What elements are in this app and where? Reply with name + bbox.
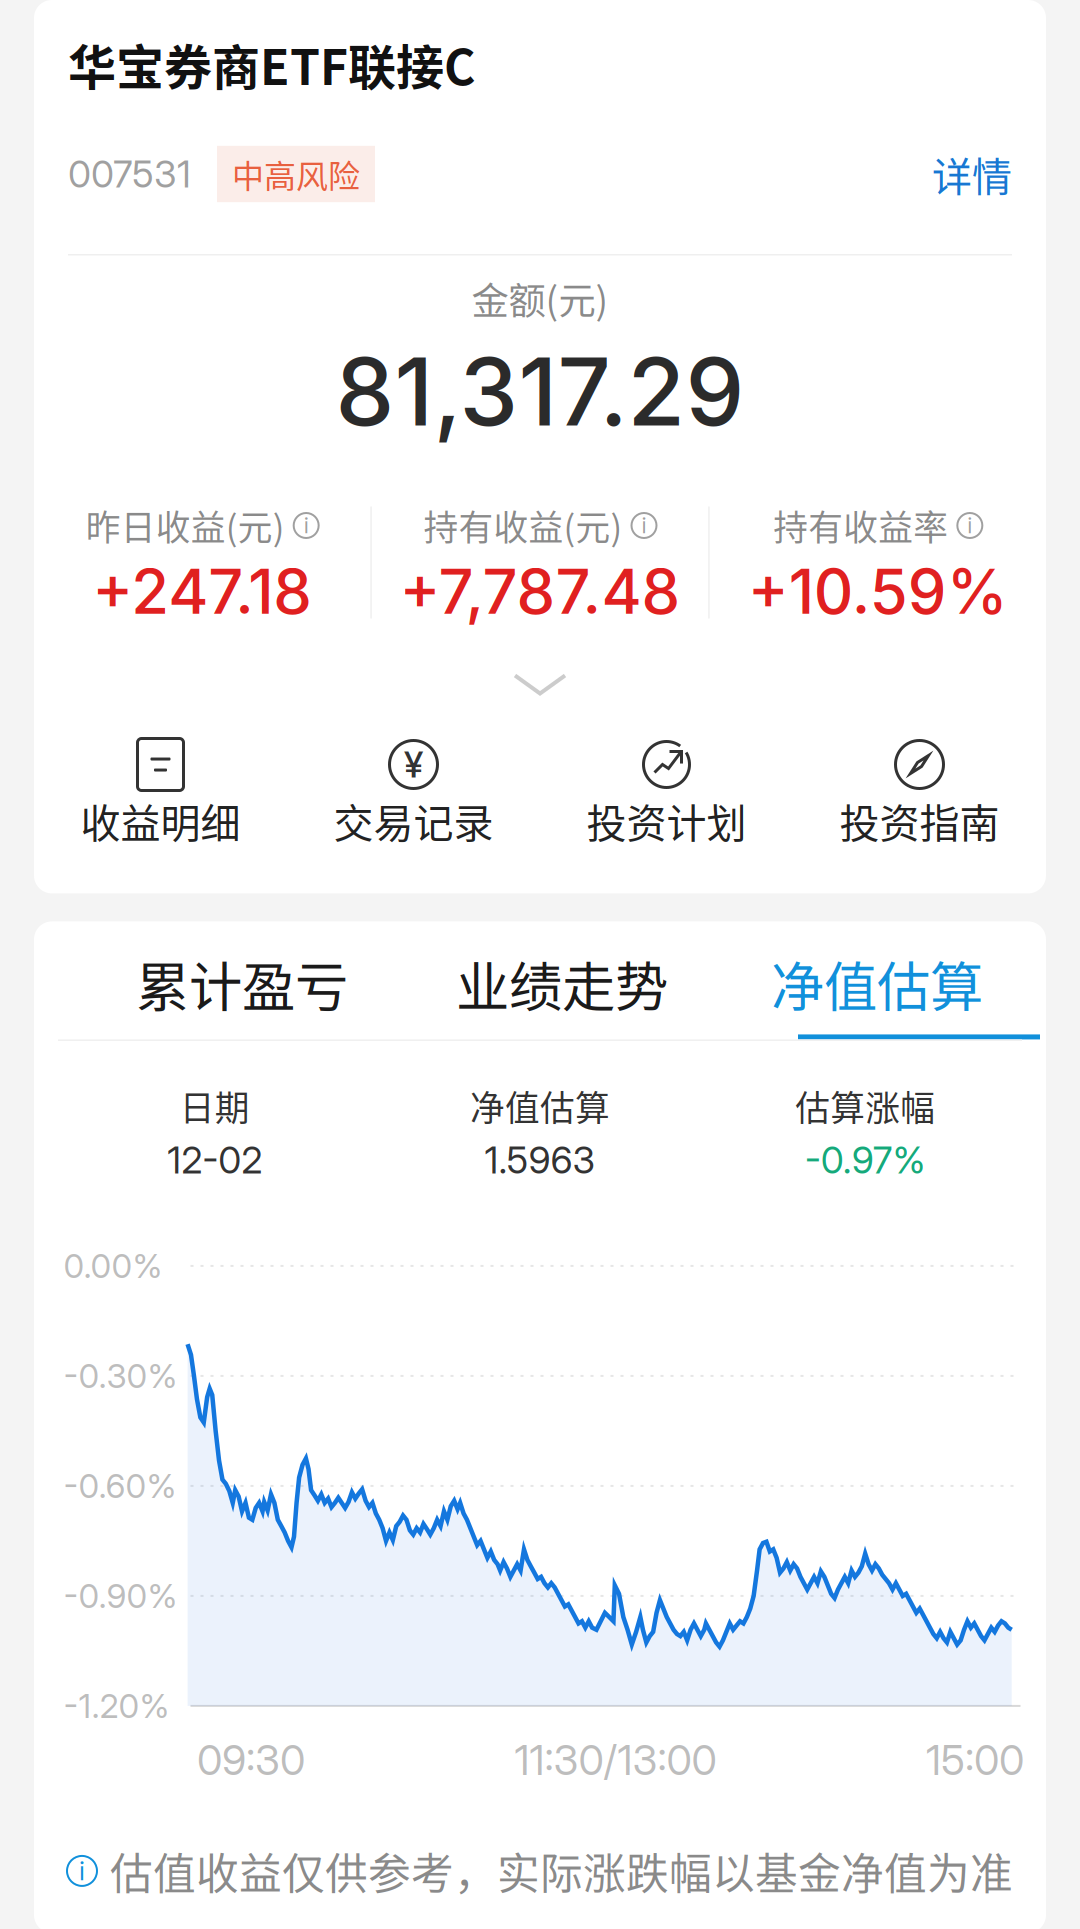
staticText: 交易记录 (333, 791, 493, 849)
button[interactable]: ¥ (287, 739, 540, 849)
staticText: +7,787.48 (399, 554, 680, 629)
staticText: -0.30% (63, 1356, 177, 1396)
staticText: 1.5963 (484, 1137, 595, 1182)
staticText: 华宝券商ETF联接C (68, 29, 475, 99)
button[interactable]: 展开更多 (433, 629, 647, 739)
staticText: 估算涨幅 (795, 1081, 935, 1131)
staticText: 估值收益仅供参考，实际涨跌幅以基金净值为准 (110, 1840, 1013, 1902)
staticText: i (641, 513, 646, 538)
button[interactable]: 详情 (932, 145, 1012, 203)
staticText: 详情 (932, 145, 1012, 203)
button[interactable]: 收益明细 (34, 739, 287, 849)
staticText: +10.59% (748, 554, 1008, 629)
staticText: 持有收益(元) (423, 500, 622, 551)
staticText: 11:30/13:00 (514, 1735, 716, 1785)
staticText: 金额(元) (471, 271, 608, 326)
button[interactable]: 累计盈亏 (87, 927, 397, 1039)
staticText: -0.97% (805, 1137, 926, 1182)
staticText: 业绩走势 (456, 945, 668, 1022)
staticText: -0.90% (63, 1576, 177, 1616)
button[interactable]: 投资指南 (793, 739, 1046, 849)
button[interactable]: 投资计划 (540, 739, 793, 849)
staticText: 净值估算 (771, 945, 983, 1022)
staticText: 007531 (68, 151, 191, 197)
staticText: 81,317.29 (335, 335, 744, 448)
staticText: 中高风险 (232, 151, 360, 197)
staticText: i (967, 513, 972, 538)
staticText: 12-02 (167, 1137, 262, 1182)
staticText: i (304, 513, 309, 538)
button[interactable]: 净值估算 (727, 927, 1027, 1039)
staticText: 累计盈亏 (136, 945, 348, 1022)
staticText: 净值估算 (470, 1081, 610, 1131)
staticText: 0.00% (63, 1246, 162, 1286)
staticText: 投资指南 (839, 791, 999, 849)
staticText: 收益明细 (80, 791, 240, 849)
staticText: -1.20% (63, 1686, 169, 1726)
staticText: +247.18 (92, 554, 312, 629)
staticText: 09:30 (197, 1735, 305, 1785)
staticText: 投资计划 (586, 791, 746, 849)
staticText: 日期 (180, 1081, 250, 1131)
staticText: -0.60% (63, 1466, 176, 1506)
staticText: i (79, 1856, 85, 1886)
staticText: 15:00 (926, 1735, 1024, 1785)
button[interactable]: 业绩走势 (397, 927, 727, 1039)
staticText: 持有收益率 (773, 500, 948, 551)
staticText: ¥ (404, 743, 423, 786)
staticText: 昨日收益(元) (86, 500, 285, 551)
